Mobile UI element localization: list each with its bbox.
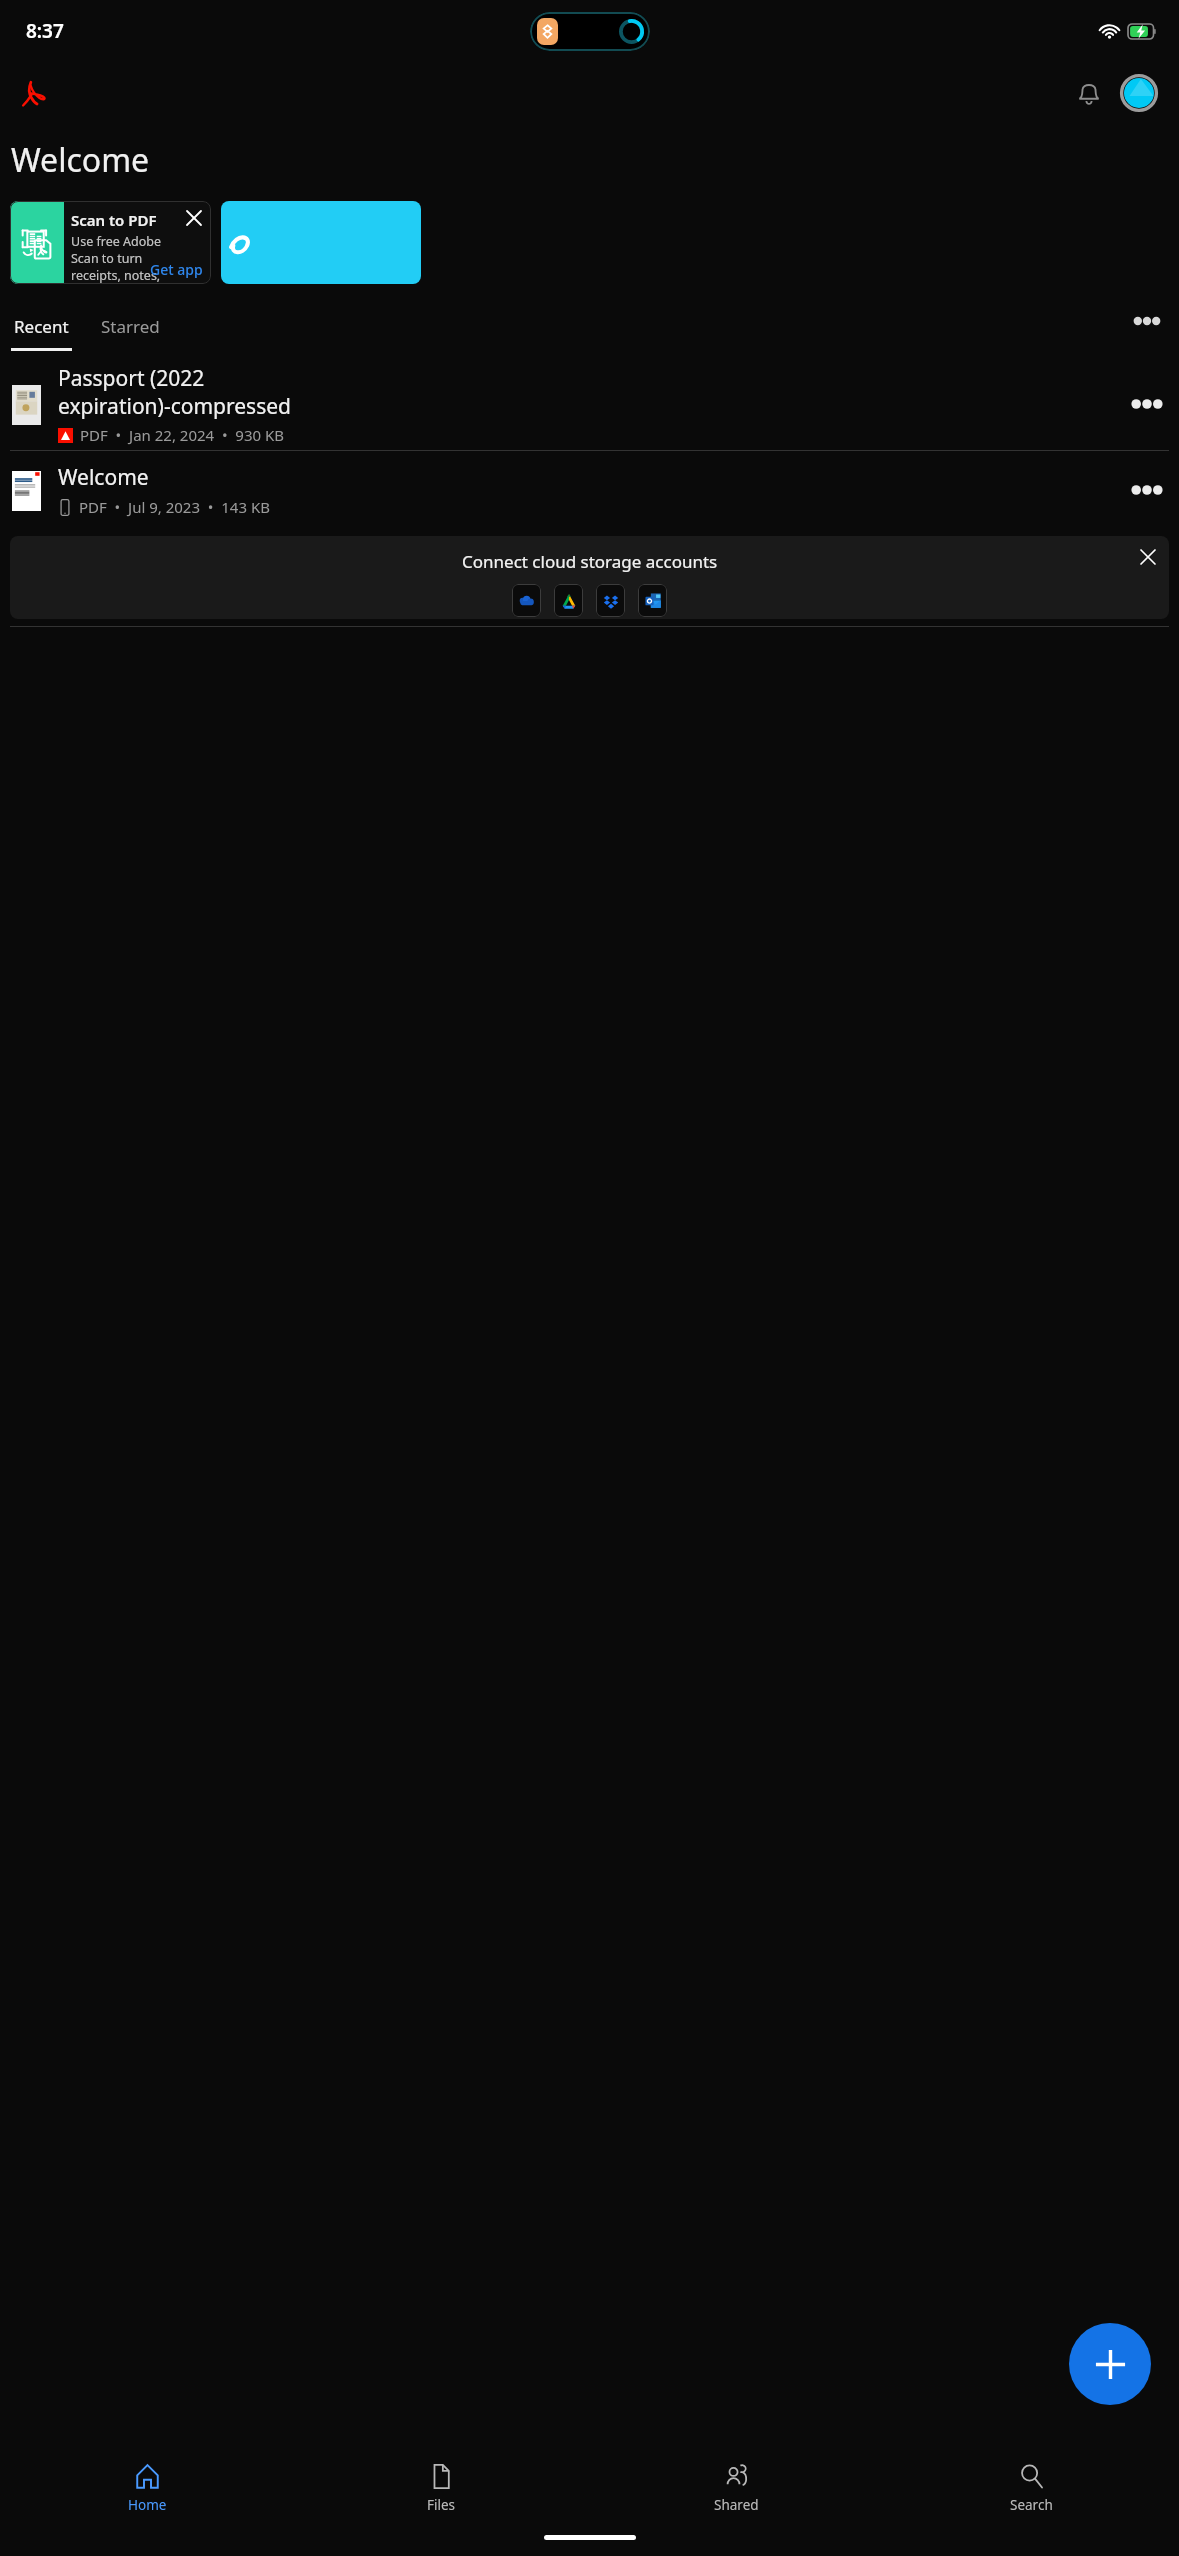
staticText: Recent	[14, 315, 69, 338]
staticText: Welcome	[11, 138, 150, 182]
staticText: Search	[1010, 2496, 1053, 2514]
staticText: Home	[128, 2496, 167, 2514]
button[interactable]: Passport (2022 expiration)-compressed	[0, 358, 1179, 450]
button[interactable]: File options	[1120, 463, 1174, 517]
button[interactable]: Shared	[589, 2452, 884, 2529]
button[interactable]: More options	[1125, 299, 1169, 343]
button[interactable]: Scan to PDF	[10, 201, 211, 284]
button[interactable]: Adobe Acrobat	[10, 69, 58, 117]
button[interactable]: File options	[1120, 377, 1174, 431]
staticText: Use free Adobe Scan to turn receipts, no…	[71, 233, 177, 284]
button[interactable]: OneDrive	[512, 584, 541, 617]
staticText: Get app	[150, 260, 203, 279]
button[interactable]: Dismiss cloud storage	[1131, 540, 1165, 574]
button[interactable]: Recent	[11, 315, 72, 351]
staticText: Starred	[101, 315, 160, 338]
button[interactable]: Search	[884, 2452, 1179, 2529]
button[interactable]: Starred	[101, 315, 160, 351]
staticText: Passport (2022 expiration)-compressed	[58, 364, 291, 420]
staticText: Connect cloud storage accounts	[462, 550, 718, 573]
staticText: PDF • Jul 9, 2023 • 143 KB	[79, 497, 270, 517]
staticText: Shared	[714, 2496, 759, 2514]
staticText: 8:37	[26, 18, 64, 44]
button[interactable]: Dropbox	[596, 584, 625, 617]
button[interactable]: Home	[0, 2452, 294, 2529]
button[interactable]: Notifications	[1065, 69, 1113, 117]
button[interactable]: Get app	[150, 260, 211, 284]
button[interactable]: Account profile	[1117, 71, 1161, 115]
staticText: Scan to PDF	[71, 210, 157, 230]
button[interactable]	[221, 201, 421, 284]
button[interactable]: Outlook	[638, 584, 667, 617]
staticText: Welcome	[58, 463, 149, 492]
button[interactable]: Welcome	[0, 451, 1179, 529]
staticText: Files	[427, 2496, 456, 2514]
button[interactable]: Dismiss Scan to PDF	[179, 203, 209, 233]
button[interactable]: Files	[294, 2452, 589, 2529]
staticText: PDF • Jan 22, 2024 • 930 KB	[80, 425, 285, 445]
button[interactable]: Create new file	[1069, 2323, 1151, 2405]
button[interactable]: Google Drive	[554, 584, 583, 617]
